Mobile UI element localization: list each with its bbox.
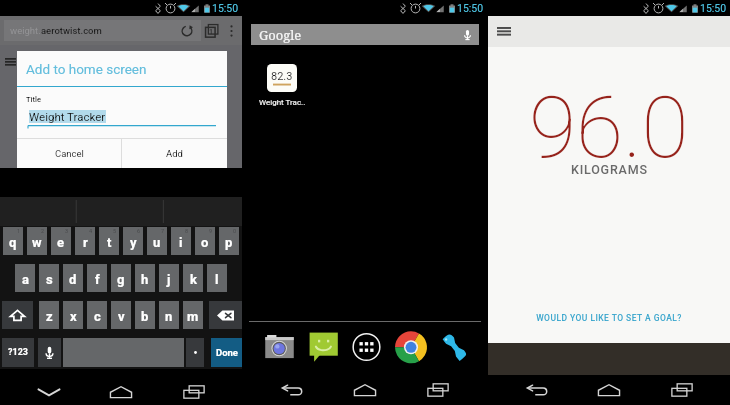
button[interactable]: Voice input xyxy=(38,338,61,367)
staticText: 15:50 xyxy=(457,2,484,14)
button[interactable] xyxy=(186,338,204,367)
button[interactable]: 5 xyxy=(99,227,119,255)
staticText: x xyxy=(70,309,77,324)
staticText: 0 xyxy=(233,228,237,234)
staticText: u xyxy=(153,235,161,250)
button[interactable]: c xyxy=(87,301,107,329)
staticText: k xyxy=(190,272,197,287)
button[interactable]: Recent apps xyxy=(414,372,462,405)
staticText: Weight Tracker xyxy=(29,110,106,123)
button[interactable]: ?123 xyxy=(2,338,34,367)
button[interactable]: Recent apps xyxy=(170,374,218,405)
staticText: Title xyxy=(26,95,41,104)
staticText: f xyxy=(95,272,100,287)
button[interactable]: Recent apps xyxy=(658,375,706,405)
button[interactable]: All apps xyxy=(352,332,381,362)
staticText: b xyxy=(141,309,149,324)
staticText: 9 xyxy=(209,228,213,234)
staticText: p xyxy=(225,235,233,250)
other: Voice search xyxy=(464,29,471,41)
staticText: i xyxy=(179,235,183,250)
button[interactable]: Home xyxy=(341,372,389,405)
staticText: Cancel xyxy=(55,148,84,159)
button[interactable]: Back xyxy=(25,374,73,405)
button[interactable]: Tabs xyxy=(201,20,223,41)
button[interactable]: weight. xyxy=(10,20,201,41)
button[interactable]: a xyxy=(15,264,35,292)
button[interactable]: n xyxy=(159,301,179,329)
staticText: 7 xyxy=(161,228,165,234)
staticText: 8 xyxy=(185,228,189,234)
button[interactable]: x xyxy=(63,301,83,329)
button[interactable]: Reload xyxy=(176,20,198,41)
staticText: Google xyxy=(259,26,302,44)
button[interactable]: 7 xyxy=(147,227,167,255)
button[interactable]: 1 xyxy=(3,227,23,255)
staticText: WOULD YOU LIKE TO SET A GOAL? xyxy=(536,313,682,323)
button[interactable]: f xyxy=(87,264,107,292)
staticText: 15:50 xyxy=(700,2,727,14)
staticText: 15:50 xyxy=(212,2,239,14)
button[interactable]: Delete xyxy=(209,301,242,329)
button[interactable]: g xyxy=(111,264,131,292)
staticText: KILOGRAMS xyxy=(571,162,648,177)
button[interactable]: Menu xyxy=(491,16,517,47)
staticText: g xyxy=(117,272,125,287)
button[interactable]: Messaging xyxy=(309,332,339,362)
button[interactable]: Chrome xyxy=(395,332,427,362)
button[interactable]: m xyxy=(183,301,203,329)
button[interactable]: 6 xyxy=(123,227,143,255)
staticText: n xyxy=(165,309,173,324)
button[interactable]: v xyxy=(111,301,131,329)
button[interactable]: WOULD YOU LIKE TO SET A GOAL? xyxy=(488,308,730,328)
staticText: Done xyxy=(216,347,238,358)
staticText: 1 xyxy=(17,228,21,234)
button[interactable]: Cancel xyxy=(17,139,121,168)
staticText: w xyxy=(32,235,42,250)
staticText: ?123 xyxy=(8,347,28,358)
button[interactable]: l xyxy=(207,264,227,292)
button[interactable]: b xyxy=(135,301,155,329)
staticText: t xyxy=(107,235,112,250)
button[interactable]: 82.3 xyxy=(256,64,308,107)
button[interactable]: Done xyxy=(211,338,242,367)
button[interactable]: 0 xyxy=(219,227,239,255)
staticText: j xyxy=(167,272,171,287)
button[interactable]: 3 xyxy=(51,227,71,255)
staticText: d xyxy=(69,272,77,287)
staticText: weight. xyxy=(10,25,41,36)
button[interactable]: 8 xyxy=(171,227,191,255)
button[interactable]: Home xyxy=(585,375,633,405)
button[interactable]: s xyxy=(39,264,59,292)
staticText: v xyxy=(118,309,125,324)
button[interactable]: h xyxy=(135,264,155,292)
staticText: 96.0 xyxy=(529,77,689,178)
button[interactable]: 96.0 xyxy=(488,77,730,178)
staticText: s xyxy=(46,272,53,287)
staticText: aerotwist.com xyxy=(41,25,102,36)
button[interactable]: Phone xyxy=(440,332,470,362)
button[interactable]: Home xyxy=(97,374,145,405)
staticText: 82.3 xyxy=(271,70,293,83)
staticText: a xyxy=(22,272,29,287)
button[interactable]: k xyxy=(183,264,203,292)
button[interactable]: Add xyxy=(122,139,227,168)
staticText: e xyxy=(57,235,65,250)
button[interactable]: Camera xyxy=(264,332,295,362)
button[interactable]: 9 xyxy=(195,227,215,255)
button[interactable]: 4 xyxy=(75,227,95,255)
staticText: Add xyxy=(166,148,183,159)
button[interactable]: j xyxy=(159,264,179,292)
button[interactable]: Shift xyxy=(2,301,33,329)
button[interactable]: Back xyxy=(513,375,561,405)
button[interactable]: Google xyxy=(251,24,479,45)
button[interactable]: Back xyxy=(268,372,316,405)
staticText: m xyxy=(187,309,199,324)
button[interactable]: 2 xyxy=(27,227,47,255)
staticText: Weight Trac.. xyxy=(259,98,306,107)
staticText: q xyxy=(9,235,17,250)
button[interactable]: More options xyxy=(223,20,240,41)
button[interactable]: d xyxy=(63,264,83,292)
button[interactable]: z xyxy=(39,301,59,329)
